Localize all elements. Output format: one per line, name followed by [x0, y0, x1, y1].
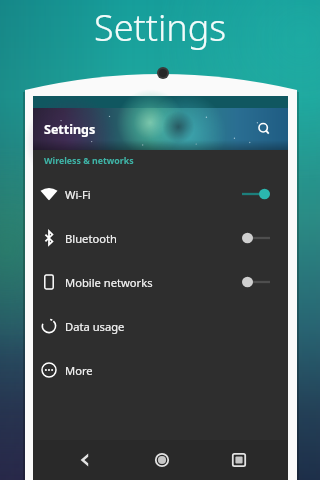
- button[interactable]: Wi-Fi: [33, 172, 288, 216]
- staticText: More: [65, 363, 93, 378]
- staticText: Bluetooth: [65, 231, 117, 246]
- staticText: Wi-Fi: [65, 187, 91, 202]
- button[interactable]: Bluetooth: [33, 216, 288, 260]
- staticText: Data usage: [65, 319, 125, 334]
- staticText: Settings: [44, 121, 96, 138]
- button[interactable]: Recents: [222, 443, 256, 477]
- button[interactable]: Search: [251, 116, 277, 142]
- button[interactable]: Data usage: [33, 304, 288, 348]
- button[interactable]: Back: [68, 443, 102, 477]
- staticText: Wireless & networks: [44, 155, 134, 167]
- staticText: Mobile networks: [65, 275, 153, 290]
- button[interactable]: Home: [145, 443, 179, 477]
- staticText: Settings: [94, 3, 227, 52]
- button[interactable]: Mobile networks: [33, 260, 288, 304]
- button[interactable]: More: [33, 348, 288, 392]
